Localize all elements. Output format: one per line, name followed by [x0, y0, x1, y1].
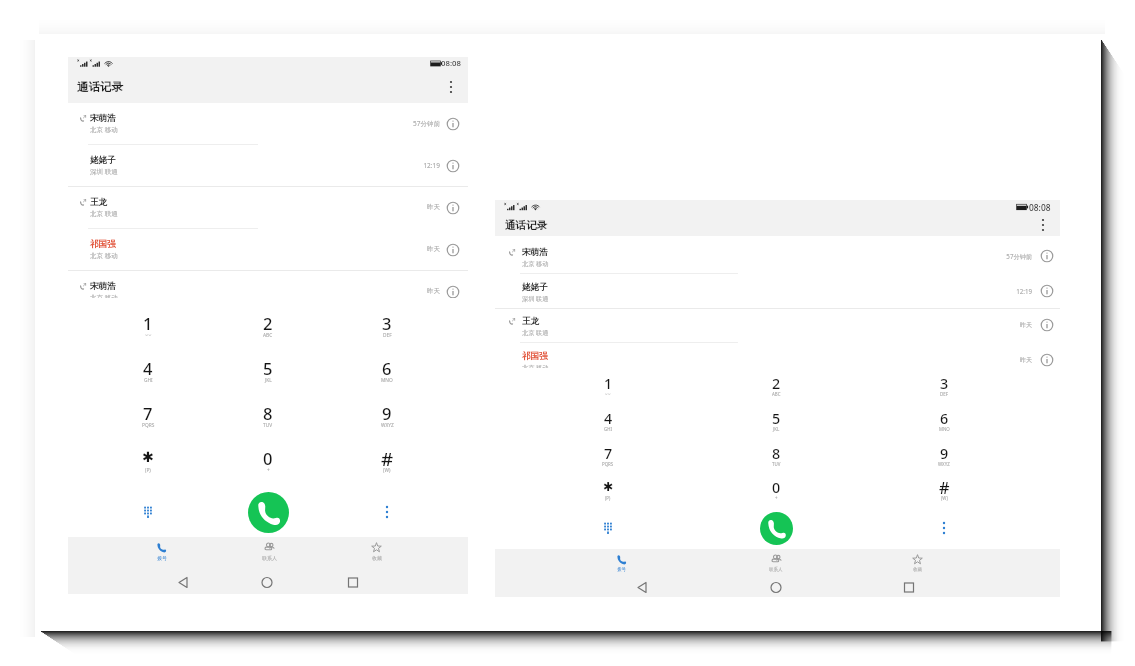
button[interactable]: #: [916, 470, 972, 505]
button[interactable]: 2: [748, 366, 804, 401]
button[interactable]: Call details: [445, 116, 461, 132]
button[interactable]: Call details: [1039, 248, 1055, 264]
button[interactable]: 收藏: [350, 537, 402, 571]
button[interactable]: Call details: [1039, 317, 1055, 333]
staticText: 1: [143, 312, 153, 334]
button[interactable]: Keypad: [134, 498, 162, 526]
button[interactable]: 收藏: [891, 549, 943, 578]
button[interactable]: 0: [748, 470, 804, 505]
button[interactable]: 宋萌浩: [68, 271, 468, 313]
staticText: (W): [941, 495, 948, 501]
button[interactable]: 5: [240, 346, 296, 391]
staticText: 祁国强: [522, 351, 548, 362]
button[interactable]: 7: [120, 391, 176, 436]
button[interactable]: 9: [916, 436, 972, 471]
staticText: MNO: [381, 377, 393, 384]
staticText: (W): [383, 467, 391, 474]
staticText: 4: [604, 409, 613, 428]
button[interactable]: More: [373, 498, 401, 526]
button[interactable]: 联系人: [243, 537, 295, 571]
button[interactable]: 2: [240, 301, 296, 346]
button[interactable]: 8: [240, 391, 296, 436]
button[interactable]: 7: [580, 436, 636, 471]
staticText: 7: [604, 444, 613, 463]
staticText: 4: [143, 357, 153, 379]
staticText: 08:08: [1029, 202, 1051, 213]
button[interactable]: Call details: [445, 158, 461, 174]
button[interactable]: Call details: [445, 200, 461, 216]
button[interactable]: 拨号: [135, 537, 187, 571]
button[interactable]: 9: [359, 391, 415, 436]
staticText: 联系人: [262, 555, 277, 561]
button[interactable]: 4: [120, 346, 176, 391]
staticText: ✱: [603, 480, 614, 494]
staticText: ABC: [263, 332, 273, 339]
staticText: MNO: [939, 426, 950, 432]
staticText: 祁国强: [90, 239, 116, 250]
button[interactable]: ✱: [580, 470, 636, 505]
button[interactable]: More options: [1038, 214, 1060, 236]
button[interactable]: 王龙: [495, 308, 1060, 343]
staticText: 2: [772, 374, 781, 393]
staticText: 昨天: [495, 321, 1032, 329]
button[interactable]: 1: [120, 301, 176, 346]
button[interactable]: Call details: [1039, 352, 1055, 368]
staticText: DEF: [383, 332, 392, 339]
staticText: 08:08: [441, 58, 461, 69]
staticText: 通话记录: [505, 219, 547, 232]
staticText: PQRS: [602, 461, 614, 467]
button[interactable]: 王龙: [68, 187, 468, 229]
staticText: 王龙: [522, 316, 539, 327]
staticText: 8: [772, 444, 781, 463]
staticText: 深圳 联通: [522, 294, 549, 302]
staticText: 12:19: [495, 287, 1032, 295]
staticText: 6: [940, 409, 949, 428]
button[interactable]: 3: [916, 366, 972, 401]
staticText: 2: [263, 312, 273, 334]
staticText: 北京 联通: [522, 328, 549, 336]
button[interactable]: Call: [248, 492, 289, 533]
staticText: 通话记录: [77, 80, 123, 94]
button[interactable]: Call details: [445, 242, 461, 258]
button[interactable]: 拨号: [595, 549, 647, 578]
button[interactable]: ✱: [120, 436, 176, 481]
button[interactable]: 1: [580, 366, 636, 401]
staticText: GHI: [144, 377, 153, 384]
staticText: 昨天: [68, 203, 440, 211]
button[interactable]: Call details: [1039, 283, 1055, 299]
button[interactable]: 6: [359, 346, 415, 391]
staticText: PQRS: [142, 422, 155, 429]
staticText: 12:19: [68, 161, 440, 170]
staticText: 7: [143, 402, 153, 424]
staticText: 8: [263, 402, 273, 424]
staticText: 北京 移动: [90, 251, 118, 260]
staticText: JKL: [773, 426, 780, 432]
button[interactable]: #: [359, 436, 415, 481]
button[interactable]: 联系人: [750, 549, 802, 578]
staticText: 收藏: [913, 567, 922, 573]
button[interactable]: 5: [748, 401, 804, 436]
button[interactable]: 祁国强: [68, 229, 468, 271]
button[interactable]: 0: [240, 436, 296, 481]
button[interactable]: More: [930, 514, 958, 542]
staticText: 3: [382, 312, 392, 334]
staticText: 王龙: [90, 197, 107, 208]
button[interactable]: 祁国强: [495, 343, 1060, 378]
button[interactable]: More options: [446, 76, 468, 98]
button[interactable]: 3: [359, 301, 415, 346]
staticText: JKL: [265, 377, 272, 384]
button[interactable]: 宋萌浩: [68, 103, 468, 145]
button[interactable]: 姥姥子: [495, 274, 1060, 309]
button[interactable]: 6: [916, 401, 972, 436]
button[interactable]: Keypad: [594, 514, 622, 542]
staticText: 5: [263, 357, 273, 379]
button[interactable]: 姥姥子: [68, 145, 468, 187]
button[interactable]: Call: [760, 512, 793, 545]
staticText: 57分钟前: [68, 119, 440, 128]
staticText: 拨号: [157, 555, 167, 561]
button[interactable]: 4: [580, 401, 636, 436]
button[interactable]: 8: [748, 436, 804, 471]
staticText: +: [775, 495, 778, 501]
button[interactable]: 宋萌浩: [495, 239, 1060, 274]
button[interactable]: Call details: [445, 284, 461, 300]
